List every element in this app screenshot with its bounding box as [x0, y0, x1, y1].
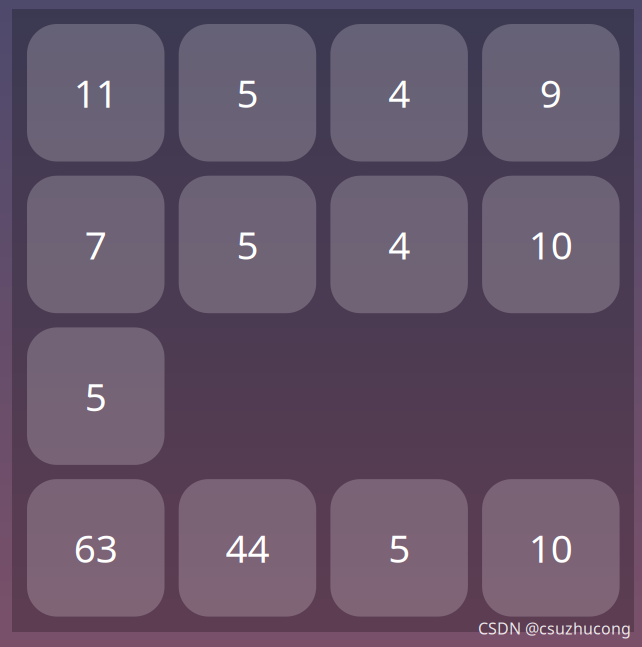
staticText: 63: [74, 522, 118, 573]
button[interactable]: 4: [330, 176, 468, 313]
staticText: 5: [388, 522, 410, 573]
staticText: CSDN @csuzhucong: [478, 618, 631, 639]
button[interactable]: 4: [330, 24, 468, 161]
button[interactable]: 7: [27, 176, 164, 313]
staticText: 7: [85, 219, 107, 270]
button[interactable]: 5: [179, 176, 316, 313]
staticText: 5: [236, 67, 258, 118]
staticText: 4: [388, 219, 410, 270]
staticText: 5: [236, 219, 258, 270]
staticText: 10: [529, 522, 573, 573]
staticText: 10: [529, 219, 573, 270]
button[interactable]: 11: [27, 24, 164, 161]
button[interactable]: 5: [330, 479, 468, 617]
button[interactable]: 9: [482, 24, 620, 161]
button[interactable]: 63: [27, 479, 164, 617]
button[interactable]: 10: [482, 176, 620, 313]
staticText: 5: [85, 370, 107, 422]
staticText: 4: [388, 67, 410, 118]
button[interactable]: 5: [179, 24, 316, 161]
button[interactable]: 5: [27, 327, 164, 465]
staticText: 11: [74, 67, 118, 118]
button[interactable]: 10: [482, 479, 620, 617]
staticText: 44: [225, 522, 269, 573]
button[interactable]: 44: [179, 479, 316, 617]
staticText: 9: [540, 67, 562, 118]
